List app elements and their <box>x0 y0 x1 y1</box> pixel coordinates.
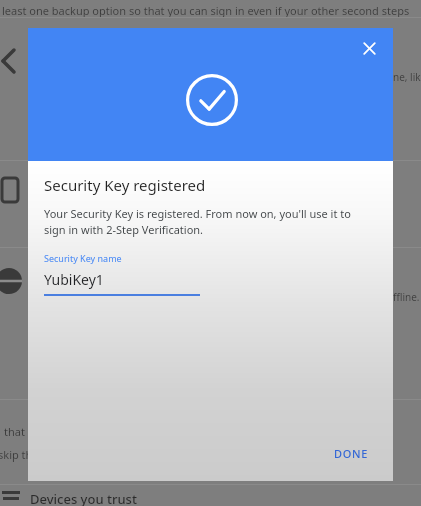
staticText: ne, like <box>393 70 421 84</box>
staticText: DONE <box>334 446 369 461</box>
button[interactable]: DONE <box>322 438 381 469</box>
staticText: that <box>4 424 25 439</box>
staticText: Security Key registered <box>44 175 206 195</box>
staticText: Devices you trust <box>30 490 137 506</box>
staticText: Security Key name <box>44 252 122 264</box>
staticText: YubiKey1 <box>44 270 104 289</box>
staticText: Your Security Key is registered. From no… <box>44 206 371 238</box>
staticText: skip th <box>0 447 33 462</box>
staticText: ffline. <box>393 290 420 304</box>
button[interactable]: Close <box>353 32 385 64</box>
button[interactable]: YubiKey1 <box>44 270 200 296</box>
staticText: least one backup option so that you can … <box>2 3 421 18</box>
